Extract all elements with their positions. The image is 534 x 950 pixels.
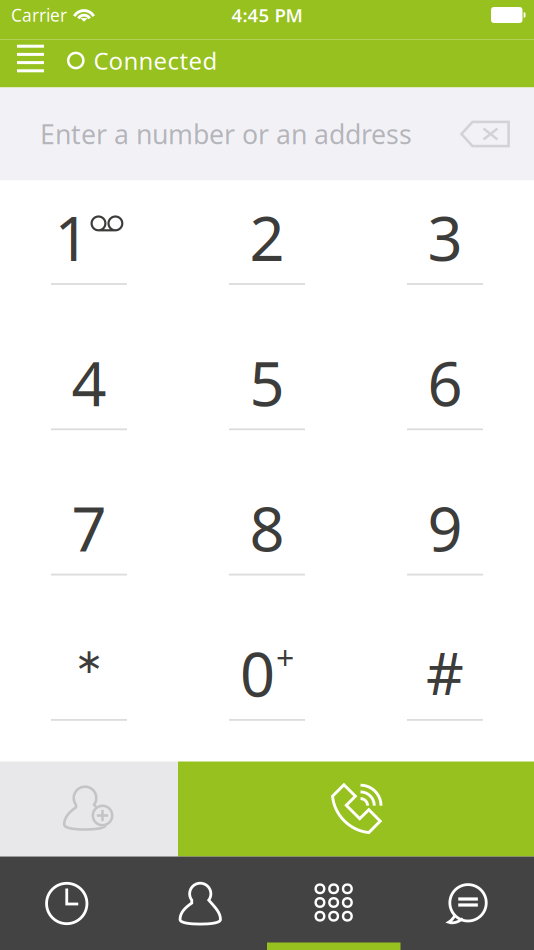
button[interactable]: 5 (178, 326, 356, 471)
staticText: Enter a number or an address (40, 116, 412, 152)
button[interactable]: Menu (0, 40, 67, 87)
staticText: 4 (71, 342, 106, 423)
button[interactable]: 2 (178, 180, 356, 326)
staticText: 8 (249, 487, 284, 568)
staticText: + (276, 636, 294, 679)
button[interactable]: Recents (0, 856, 133, 950)
button[interactable]: 3 (356, 180, 534, 326)
button[interactable]: Keypad (267, 856, 400, 950)
button[interactable]: # (356, 616, 534, 762)
staticText: 6 (427, 342, 462, 423)
staticText: 9 (427, 487, 462, 568)
staticText: 5 (249, 342, 284, 423)
button[interactable]: 1 (0, 180, 178, 326)
staticText: Connected (94, 45, 218, 76)
button[interactable]: Add contact (0, 761, 178, 856)
staticText: 3 (427, 196, 462, 278)
staticText: 0 (240, 632, 275, 714)
button[interactable]: 6 (356, 326, 534, 471)
staticText: 2 (249, 196, 284, 278)
button[interactable]: 7 (0, 471, 178, 616)
button[interactable]: 9 (356, 471, 534, 616)
staticText: 1 (54, 196, 89, 278)
button[interactable]: ∗ (0, 616, 178, 762)
button[interactable]: Call (178, 761, 534, 856)
button[interactable]: 4 (0, 326, 178, 471)
button[interactable]: 8 (178, 471, 356, 616)
button[interactable]: 0 (178, 616, 356, 762)
staticText: ∗ (74, 641, 103, 681)
staticText: Carrier (11, 3, 67, 26)
staticText: 4:45 PM (231, 3, 302, 27)
button[interactable]: Contacts (133, 856, 267, 950)
staticText: 7 (71, 487, 106, 568)
button[interactable]: Messages (400, 856, 534, 950)
staticText: # (426, 633, 464, 711)
button[interactable]: Delete (460, 104, 510, 163)
